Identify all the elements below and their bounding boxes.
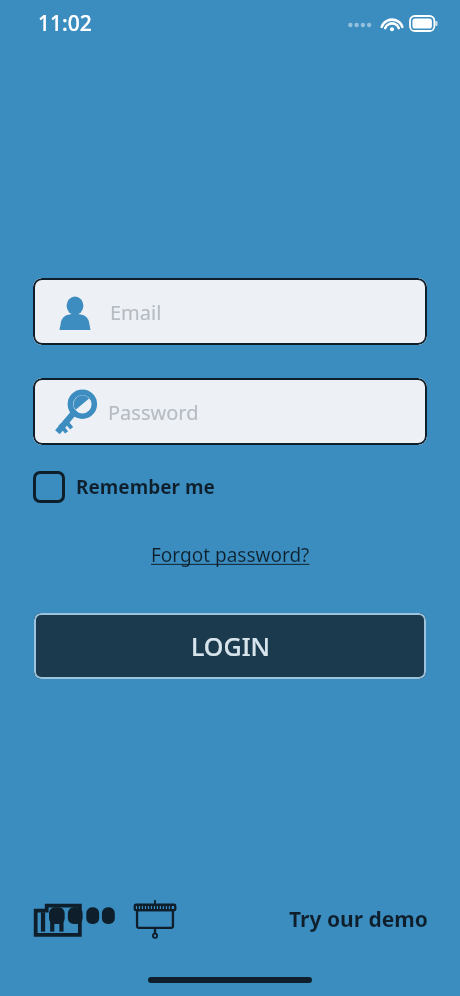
button[interactable]: Email	[33, 278, 427, 345]
button[interactable]: LOGIN	[34, 613, 426, 679]
button[interactable]: Forgot password?	[145, 536, 316, 574]
staticText: 11:02	[38, 9, 92, 38]
button[interactable]: Try our demo	[289, 905, 428, 934]
staticText: Remember me	[76, 474, 215, 500]
staticText: Email	[110, 299, 162, 326]
button[interactable]: Remember me	[33, 469, 215, 505]
staticText: Password	[108, 399, 199, 426]
staticText: LOGIN	[191, 629, 270, 663]
button[interactable]: Password	[33, 378, 427, 445]
